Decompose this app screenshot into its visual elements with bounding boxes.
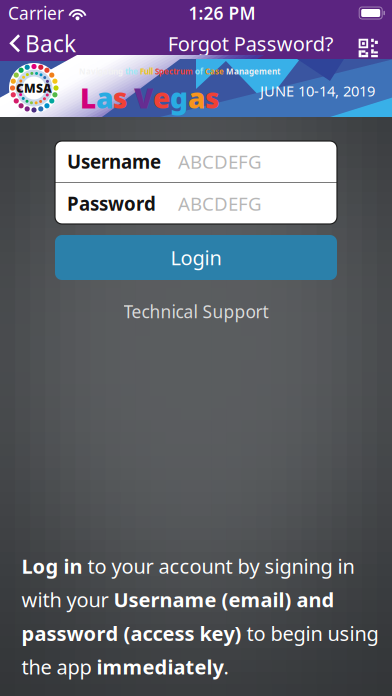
- staticText: Password: [67, 191, 156, 216]
- staticText: a: [188, 79, 205, 116]
- staticText: s: [205, 79, 219, 116]
- staticText: a: [96, 79, 113, 116]
- staticText: Case: [205, 66, 226, 77]
- staticText: the: [125, 66, 140, 77]
- button[interactable]: Technical Support: [113, 294, 278, 329]
- staticText: ABCDEFG: [178, 191, 262, 216]
- staticText: Navigating: [79, 66, 125, 77]
- staticText: Carrier: [8, 1, 64, 24]
- staticText: g: [170, 79, 188, 116]
- staticText: [127, 79, 134, 116]
- staticText: Forgot Password?: [168, 30, 334, 57]
- staticText: JUNE 10-14, 2019: [260, 81, 375, 100]
- staticText: e: [153, 79, 170, 116]
- staticText: Management: [226, 66, 280, 77]
- staticText: CMSA: [16, 80, 52, 96]
- staticText: s: [113, 79, 127, 116]
- button[interactable]: Forgot Password?: [168, 26, 334, 61]
- staticText: Full: [140, 66, 155, 77]
- staticText: 1:26 PM: [189, 1, 256, 24]
- staticText: ABCDEFG: [178, 149, 262, 174]
- staticText: Back: [25, 28, 76, 58]
- button[interactable]: Back: [0, 26, 76, 61]
- button[interactable]: Login: [55, 235, 337, 280]
- staticText: Login: [170, 244, 221, 271]
- staticText: L: [80, 79, 96, 116]
- staticText: Technical Support: [123, 300, 268, 323]
- staticText: Spectrum: [155, 66, 195, 77]
- staticText: Log in to your account by signing in wit…: [21, 553, 378, 680]
- button[interactable]: Scan QR code: [334, 26, 392, 61]
- staticText: of: [195, 66, 205, 77]
- staticText: V: [134, 79, 153, 116]
- staticText: Username: [67, 149, 161, 174]
